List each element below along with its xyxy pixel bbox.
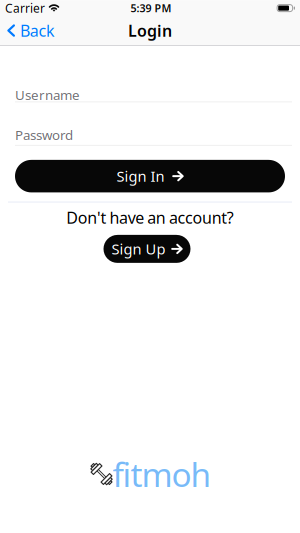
staticText: fitmoh (112, 452, 211, 496)
button[interactable]: Sign In (15, 160, 285, 192)
button[interactable]: Back (0, 20, 55, 41)
staticText: Login (128, 20, 172, 41)
staticText: Carrier (5, 0, 45, 16)
staticText: 5:39 PM (130, 1, 171, 15)
staticText: Sign Up (111, 239, 165, 259)
button[interactable]: Sign Up (103, 235, 190, 263)
staticText: Don't have an account? (66, 207, 234, 228)
staticText: Sign In (116, 166, 164, 186)
staticText: Username (15, 86, 80, 104)
staticText: Back (20, 20, 55, 41)
staticText: Password (15, 126, 73, 144)
